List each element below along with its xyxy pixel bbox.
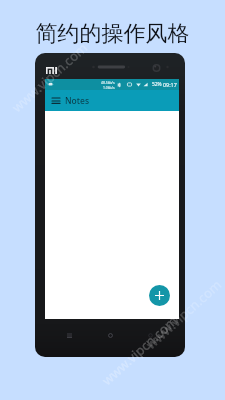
button[interactable]: Back [145, 330, 156, 341]
staticText: 09:17 [163, 81, 177, 88]
staticText: 简约的操作风格 [0, 20, 225, 48]
button[interactable]: Recents [64, 330, 75, 341]
staticText: 52% [152, 81, 162, 88]
button[interactable]: Add note [149, 285, 170, 306]
button[interactable]: Open navigation menu [49, 94, 63, 108]
button[interactable]: Home [105, 330, 116, 341]
staticText: 48.5kb/s [101, 80, 115, 85]
staticText: Notes [65, 95, 90, 107]
staticText: www.vipcn.com [98, 311, 181, 389]
staticText: www.vipcn.com [142, 275, 225, 353]
staticText: www.vipcn.com [8, 38, 91, 116]
staticText: 1.0kb/s [103, 85, 115, 90]
